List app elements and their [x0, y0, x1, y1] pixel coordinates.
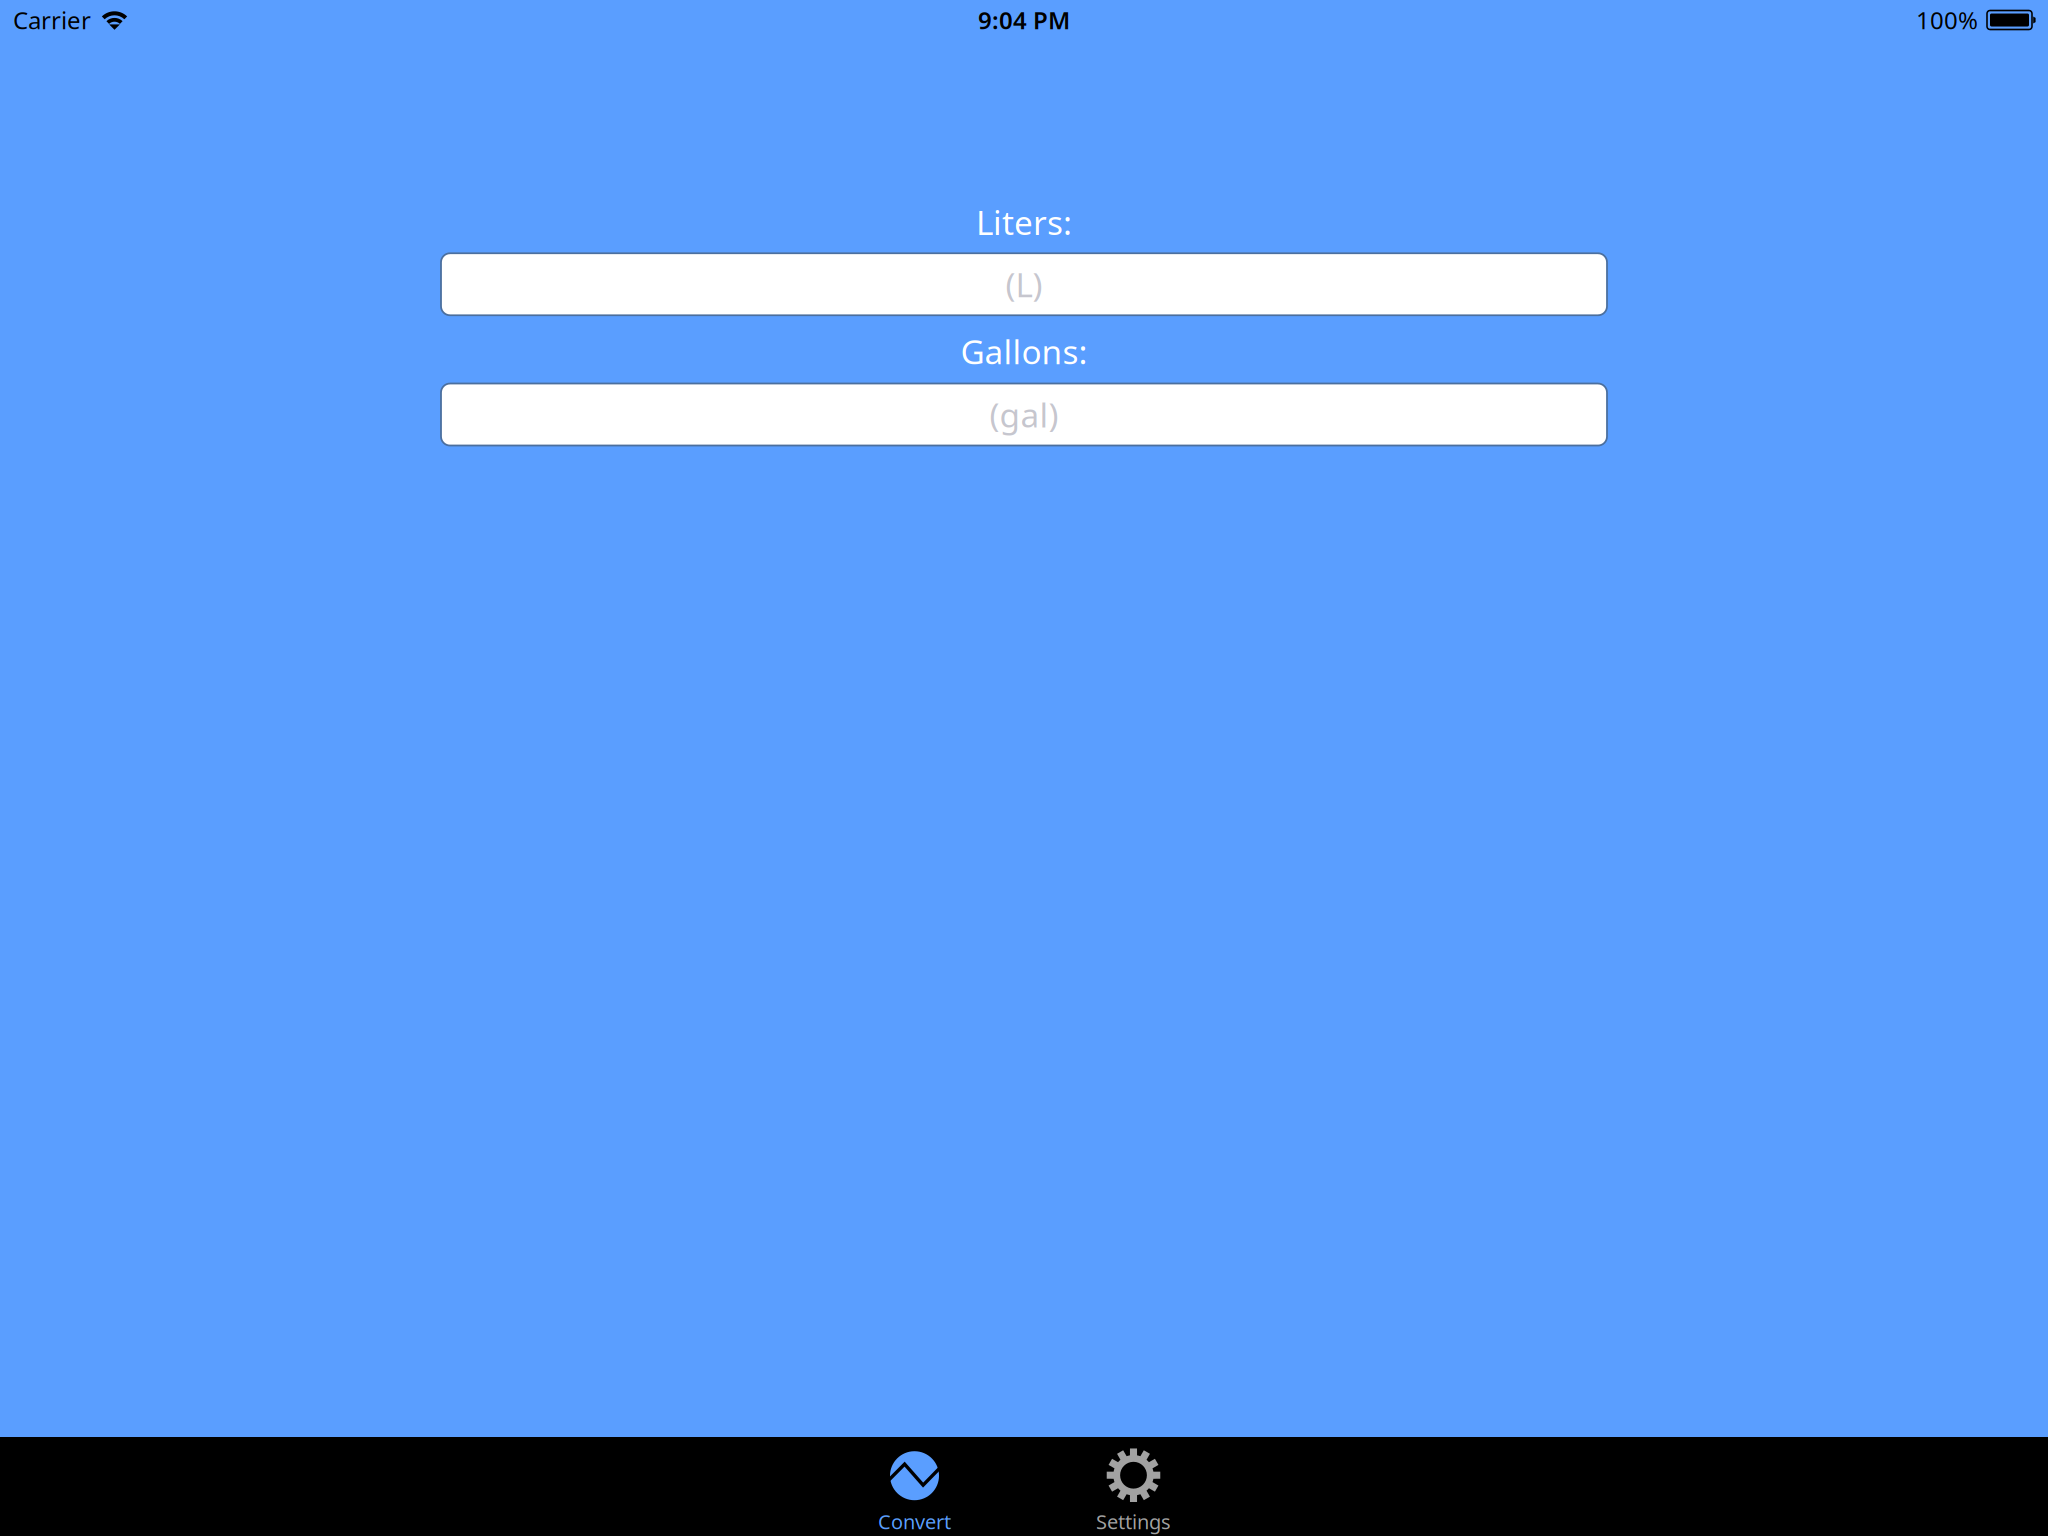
staticText: (gal)	[989, 392, 1058, 437]
button[interactable]: Liters	[441, 253, 1607, 315]
staticText: Liters:	[976, 200, 1072, 244]
staticText: (L)	[1005, 262, 1042, 306]
button[interactable]: Gallons	[441, 383, 1607, 445]
staticText: 9:04 PM	[978, 4, 1070, 36]
staticText: Convert	[878, 1508, 951, 1535]
button[interactable]: Convert	[859, 1437, 969, 1536]
staticText: Gallons:	[960, 329, 1087, 374]
staticText: Settings	[1096, 1508, 1171, 1535]
staticText: Carrier	[13, 4, 91, 36]
button[interactable]: Settings	[1078, 1437, 1188, 1536]
staticText: 100%	[1916, 4, 1978, 36]
